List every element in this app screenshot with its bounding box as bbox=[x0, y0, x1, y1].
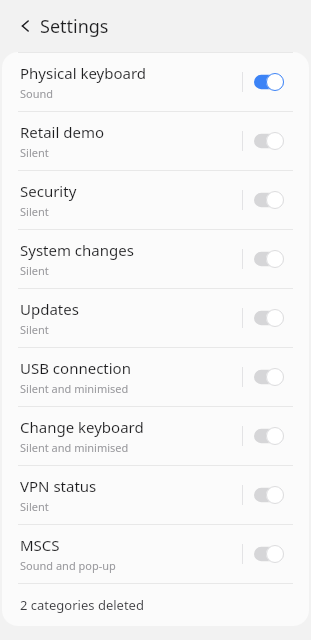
staticText: MSCS bbox=[20, 535, 60, 555]
staticText: Settings bbox=[40, 14, 109, 39]
button[interactable]: VPN status bbox=[2, 466, 309, 524]
button[interactable]: Toggle off bbox=[243, 348, 295, 406]
staticText: Security bbox=[20, 181, 77, 201]
button[interactable]: Toggle off bbox=[243, 525, 295, 583]
staticText: Silent and minimised bbox=[20, 381, 129, 396]
staticText: Retail demo bbox=[20, 122, 105, 142]
button[interactable]: MSCS bbox=[2, 525, 309, 583]
button[interactable]: Toggle off bbox=[243, 230, 295, 288]
button[interactable]: Toggle off bbox=[243, 466, 295, 524]
staticText: Updates bbox=[20, 299, 79, 319]
button[interactable]: Back bbox=[8, 8, 44, 44]
staticText: 2 categories deleted bbox=[20, 596, 144, 614]
button[interactable]: Toggle off bbox=[243, 289, 295, 347]
staticText: Sound and pop-up bbox=[20, 558, 116, 573]
button[interactable]: Security bbox=[2, 171, 309, 229]
staticText: USB connection bbox=[20, 358, 131, 378]
button[interactable]: Retail demo bbox=[2, 112, 309, 170]
staticText: Silent bbox=[20, 204, 49, 219]
button[interactable]: USB connection bbox=[2, 348, 309, 406]
staticText: Silent bbox=[20, 145, 49, 160]
button[interactable]: System changes bbox=[2, 230, 309, 288]
button[interactable]: 2 categories deleted bbox=[2, 584, 309, 626]
staticText: Sound bbox=[20, 86, 54, 101]
button[interactable]: Toggle off bbox=[243, 171, 295, 229]
staticText: Physical keyboard bbox=[20, 63, 147, 83]
button[interactable]: Updates bbox=[2, 289, 309, 347]
button[interactable]: Toggle off bbox=[243, 112, 295, 170]
button[interactable]: Toggle on bbox=[243, 53, 295, 111]
staticText: Silent bbox=[20, 499, 49, 514]
staticText: Silent and minimised bbox=[20, 440, 129, 455]
button[interactable]: Toggle off bbox=[243, 407, 295, 465]
button[interactable]: Physical keyboard bbox=[2, 53, 309, 111]
staticText: System changes bbox=[20, 240, 134, 260]
staticText: Change keyboard bbox=[20, 417, 144, 437]
staticText: Silent bbox=[20, 263, 49, 278]
button[interactable]: Change keyboard bbox=[2, 407, 309, 465]
staticText: VPN status bbox=[20, 476, 97, 496]
staticText: Silent bbox=[20, 322, 49, 337]
